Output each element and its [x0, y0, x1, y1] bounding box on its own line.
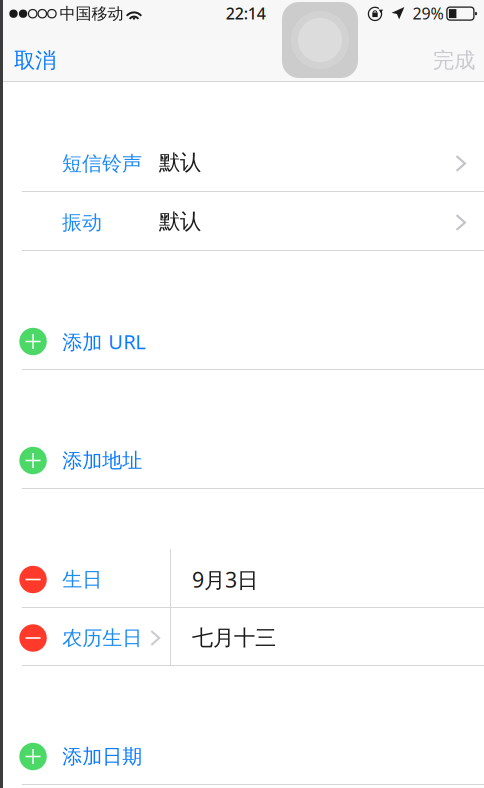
staticText: 短信铃声 — [62, 151, 142, 176]
staticText: 默认 — [159, 208, 201, 235]
staticText: 完成 — [433, 47, 475, 74]
staticText: 中国移动 — [59, 4, 123, 24]
button[interactable]: 取消 — [0, 40, 67, 81]
button[interactable]: AssistiveTouch — [282, 2, 358, 78]
button[interactable]: 农历生日 — [0, 608, 484, 665]
staticText: 9月3日 — [192, 565, 258, 594]
button[interactable]: 添加 URL — [0, 311, 484, 369]
staticText: 29% — [412, 3, 443, 24]
button[interactable]: 振动 — [0, 192, 484, 250]
staticText: 22:14 — [226, 3, 266, 24]
staticText: 七月十三 — [192, 625, 276, 651]
staticText: 添加 URL — [62, 328, 145, 355]
staticText: 添加地址 — [62, 448, 142, 473]
staticText: 农历生日 — [62, 626, 142, 650]
staticText: 生日 — [62, 567, 102, 592]
button[interactable]: 短信铃声 — [0, 133, 484, 191]
button[interactable]: 完成 — [422, 40, 484, 81]
staticText: 振动 — [62, 210, 102, 235]
button[interactable]: 添加地址 — [0, 430, 484, 488]
staticText: 默认 — [159, 149, 201, 176]
staticText: 添加日期 — [62, 744, 142, 769]
button[interactable]: 添加日期 — [0, 726, 484, 784]
button[interactable]: 生日 — [0, 549, 484, 607]
staticText: 取消 — [14, 47, 56, 74]
